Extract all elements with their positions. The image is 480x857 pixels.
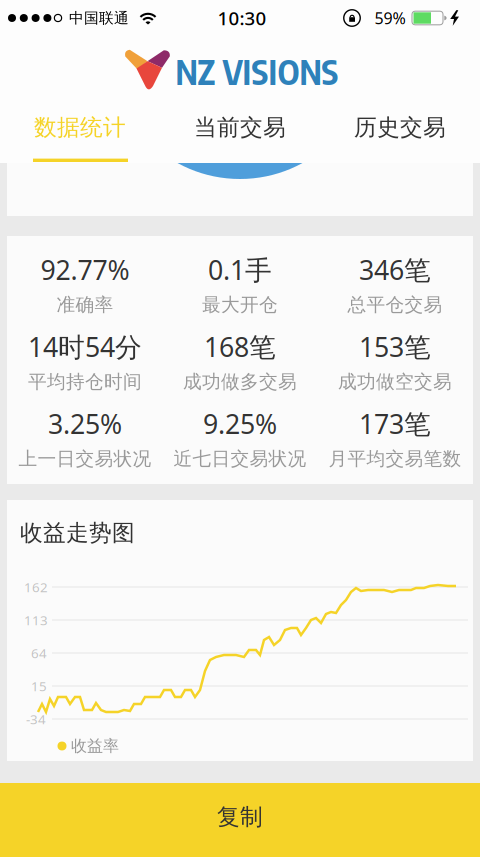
- staticText: 数据统计: [34, 114, 126, 141]
- staticText: 成功做空交易: [338, 370, 452, 393]
- staticText: 上一日交易状况: [18, 447, 151, 470]
- staticText: 9.25%: [203, 406, 277, 441]
- staticText: 复制: [217, 803, 263, 831]
- staticText: 中国联通: [69, 9, 129, 27]
- button[interactable]: 历史交易: [320, 100, 480, 155]
- staticText: 收益走势图: [20, 519, 135, 547]
- staticText: 162: [24, 578, 48, 596]
- staticText: 153笔: [359, 329, 431, 364]
- staticText: 168笔: [204, 329, 276, 364]
- staticText: 月平均交易笔数: [328, 447, 461, 470]
- staticText: 收益率: [71, 736, 119, 756]
- button[interactable]: 当前交易: [160, 100, 320, 155]
- staticText: 59%: [374, 7, 405, 29]
- staticText: 近七日交易状况: [173, 447, 306, 470]
- staticText: -34: [26, 710, 46, 728]
- staticText: 173笔: [359, 406, 431, 441]
- staticText: 历史交易: [354, 114, 446, 141]
- staticText: 平均持仓时间: [28, 370, 142, 393]
- staticText: 92.77%: [40, 252, 129, 287]
- staticText: NZ VISIONS: [175, 51, 338, 92]
- staticText: 准确率: [56, 293, 113, 316]
- staticText: 346笔: [359, 252, 431, 287]
- staticText: 10:30: [217, 6, 266, 30]
- staticText: 15: [31, 677, 47, 695]
- staticText: 0.1手: [208, 252, 272, 287]
- staticText: 成功做多交易: [183, 370, 297, 393]
- button[interactable]: 复制: [0, 783, 480, 857]
- staticText: 113: [24, 611, 48, 629]
- staticText: 最大开仓: [202, 293, 278, 316]
- staticText: 64: [31, 644, 47, 662]
- staticText: 当前交易: [194, 114, 286, 141]
- staticText: 总平仓交易: [347, 293, 442, 316]
- button[interactable]: 数据统计: [0, 100, 160, 155]
- staticText: 3.25%: [48, 406, 122, 441]
- staticText: 14时54分: [28, 329, 142, 364]
